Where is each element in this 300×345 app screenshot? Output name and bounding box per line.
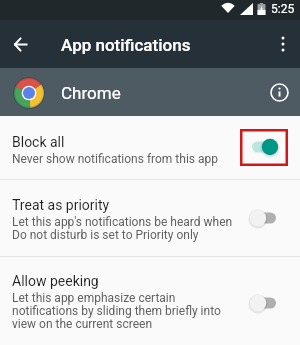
staticText: Block all bbox=[12, 134, 65, 150]
button[interactable]: Off bbox=[246, 287, 284, 319]
button[interactable]: More options bbox=[269, 30, 297, 58]
staticText: Let this app emphasize certain notificat… bbox=[12, 291, 221, 331]
staticText: 5:25 bbox=[271, 2, 295, 16]
button[interactable]: App info bbox=[264, 77, 294, 107]
button[interactable]: Chrome bbox=[0, 68, 300, 116]
button[interactable]: Off bbox=[246, 202, 284, 234]
button[interactable]: Back bbox=[7, 30, 35, 58]
button[interactable]: Block all, on bbox=[246, 131, 284, 163]
staticText: Treat as priority bbox=[12, 197, 110, 213]
staticText: Let this app's notifications be heard wh… bbox=[12, 215, 233, 242]
staticText: App notifications bbox=[61, 35, 191, 55]
staticText: Chrome bbox=[61, 83, 121, 103]
staticText: Never show notifications from this app bbox=[12, 152, 218, 166]
staticText: Allow peeking bbox=[12, 273, 99, 289]
